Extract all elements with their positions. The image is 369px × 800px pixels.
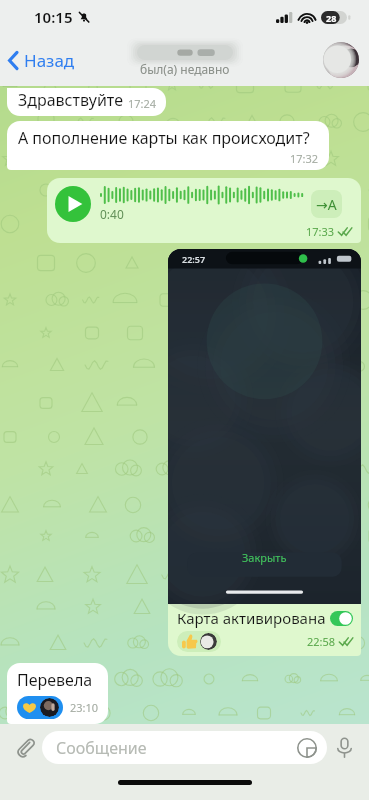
button[interactable]: Назад — [0, 43, 85, 78]
staticText: Перевела — [17, 669, 93, 691]
staticText: Карта активирована — [177, 608, 326, 628]
staticText: 23:10 — [70, 700, 99, 715]
staticText: Закрыть — [242, 550, 287, 565]
button[interactable]: Play voice message — [47, 178, 361, 243]
staticText: Сообщение — [56, 737, 147, 759]
button[interactable]: Перевела — [7, 663, 108, 724]
staticText: 22:58 — [307, 634, 336, 649]
staticText: Назад — [24, 49, 75, 72]
button[interactable]: Reaction — [17, 696, 63, 719]
button[interactable]: Закрыть — [168, 249, 361, 656]
button[interactable]: А пополнение карты как происходит? — [7, 121, 329, 170]
button[interactable]: Stickers — [297, 738, 317, 758]
button[interactable]: Play voice message — [55, 186, 91, 222]
staticText: А пополнение карты как происходит? — [18, 127, 310, 149]
staticText: →A — [316, 195, 337, 214]
staticText: 17:24 — [128, 96, 157, 111]
staticText: 28 — [326, 12, 337, 24]
button[interactable]: Thumbs up reaction — [177, 631, 221, 652]
button[interactable]: Сообщение — [42, 731, 327, 764]
staticText: был(а) недавно — [140, 61, 230, 77]
button[interactable]: Transcribe — [311, 190, 342, 218]
staticText: 17:33 — [306, 224, 335, 239]
staticText: 10:15 — [34, 7, 73, 27]
button[interactable]: Profile photo — [323, 42, 359, 78]
button[interactable]: Record voice message — [327, 730, 361, 764]
staticText: 0:40 — [100, 206, 124, 222]
staticText: 17:32 — [290, 151, 319, 166]
staticText: Здравствуйте — [18, 89, 123, 111]
button[interactable]: Здравствуйте — [7, 88, 166, 116]
staticText: 22:57 — [182, 253, 206, 265]
button[interactable]: Attach — [8, 730, 42, 764]
